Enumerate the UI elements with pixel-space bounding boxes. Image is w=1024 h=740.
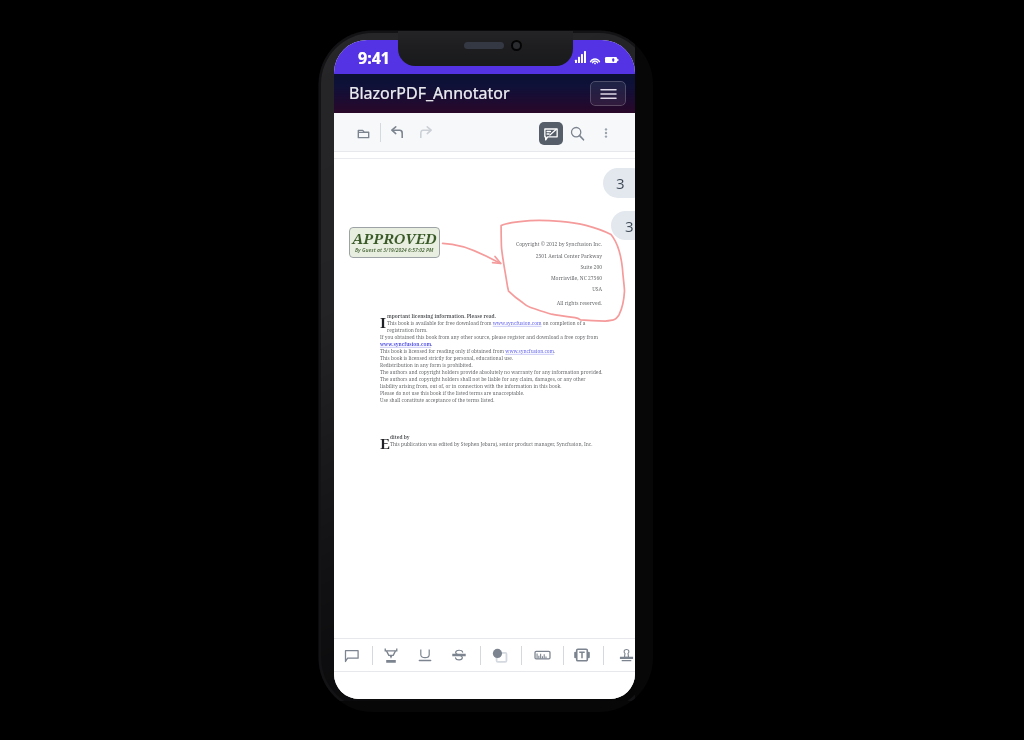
- staticText: BlazorPDF_Annotator: [349, 82, 510, 104]
- staticText: Suite 200: [482, 264, 602, 271]
- staticText: mportant licensing information. Please r…: [387, 313, 497, 320]
- button[interactable]: Shapes: [486, 642, 512, 668]
- button[interactable]: Undo: [385, 120, 411, 146]
- button[interactable]: Comment: [338, 642, 364, 668]
- staticText: liability arising from, out of, or in co…: [380, 383, 562, 390]
- staticText: All rights reserved.: [482, 300, 602, 307]
- button[interactable]: Open file: [350, 120, 376, 146]
- button[interactable]: Stamp: [613, 642, 635, 668]
- button[interactable]: Annotate: [539, 122, 563, 145]
- staticText: USA: [482, 286, 602, 293]
- staticText: 2501 Aerial Center Parkway: [482, 253, 602, 260]
- button[interactable]: Underline: [412, 642, 438, 668]
- staticText: Redistribution in any form is prohibited…: [380, 362, 473, 369]
- staticText: This publication was edited by Stephen J…: [390, 441, 593, 448]
- button[interactable]: Highlight: [378, 642, 404, 668]
- staticText: This book is licensed strictly for perso…: [380, 355, 514, 362]
- staticText: APPROVED: [352, 228, 437, 248]
- staticText: 3: [616, 173, 625, 193]
- staticText: The authors and copyright holders provid…: [380, 369, 603, 376]
- button[interactable]: Search: [564, 120, 590, 146]
- button[interactable]: Strikethrough: [446, 642, 472, 668]
- button[interactable]: Menu: [590, 81, 626, 106]
- staticText: Morrisville, NC 27560: [482, 275, 602, 282]
- button[interactable]: Text box: [569, 642, 595, 668]
- staticText: Use shall constitute acceptance of the t…: [380, 397, 495, 404]
- button[interactable]: Redo: [412, 120, 438, 146]
- button[interactable]: Measure: [529, 642, 555, 668]
- staticText: dited by: [390, 434, 410, 441]
- staticText: By Guest at 3/19/2024 6:57:02 PM: [355, 247, 434, 254]
- staticText: Copyright © 2012 by Syncfusion Inc.: [482, 241, 602, 248]
- button[interactable]: More options: [593, 120, 619, 146]
- staticText: If you obtained this book from any other…: [380, 334, 598, 341]
- staticText: registration form.: [387, 327, 428, 334]
- staticText: Please do not use this book if the liste…: [380, 390, 525, 397]
- staticText: 3: [625, 216, 634, 236]
- staticText: This book is available for free download…: [387, 320, 586, 327]
- staticText: www.syncfusion.com.: [380, 341, 433, 348]
- staticText: This book is licensed for reading only i…: [380, 348, 556, 355]
- staticText: The authors and copyright holders shall …: [380, 376, 586, 383]
- staticText: E: [380, 433, 390, 453]
- staticText: I: [380, 312, 387, 332]
- staticText: 9:41: [358, 47, 390, 69]
